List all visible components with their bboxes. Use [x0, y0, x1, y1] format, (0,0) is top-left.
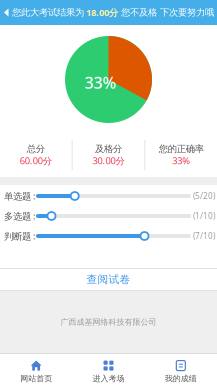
button[interactable]: 查阅试卷	[0, 269, 217, 290]
staticText: 多选题 :	[4, 210, 36, 222]
button[interactable]: 进入考场	[72, 357, 145, 387]
staticText: 您不及格	[118, 7, 157, 18]
staticText: 您此大考试结果为	[12, 7, 84, 18]
staticText: 33%	[172, 154, 190, 167]
button[interactable]: Back	[0, 0, 12, 24]
staticText: 我的成绩	[165, 374, 197, 383]
staticText: 广西成基网络科技有限公司	[60, 317, 156, 327]
staticText: (5/20)	[193, 191, 215, 201]
staticText: 总分	[27, 143, 45, 155]
staticText: 查阅试卷	[86, 273, 130, 286]
staticText: 您的正确率	[159, 143, 204, 155]
staticText: 18.00分	[84, 6, 118, 19]
staticText: 60.00分	[20, 154, 52, 167]
button[interactable]: 我的成绩	[145, 357, 217, 387]
staticText: 网站首页	[20, 374, 52, 383]
staticText: 及格分	[95, 143, 122, 155]
staticText: (1/10)	[193, 211, 215, 221]
staticText: 进入考场	[92, 374, 124, 383]
staticText: 30.00分	[92, 154, 124, 167]
staticText: 判断题 :	[4, 230, 36, 242]
staticText: 下次要努力哦	[157, 7, 214, 18]
staticText: 33%	[84, 72, 116, 93]
staticText: (7/10)	[193, 231, 215, 241]
staticText: 单选题 :	[4, 190, 36, 202]
button[interactable]: 网站首页	[0, 357, 72, 387]
